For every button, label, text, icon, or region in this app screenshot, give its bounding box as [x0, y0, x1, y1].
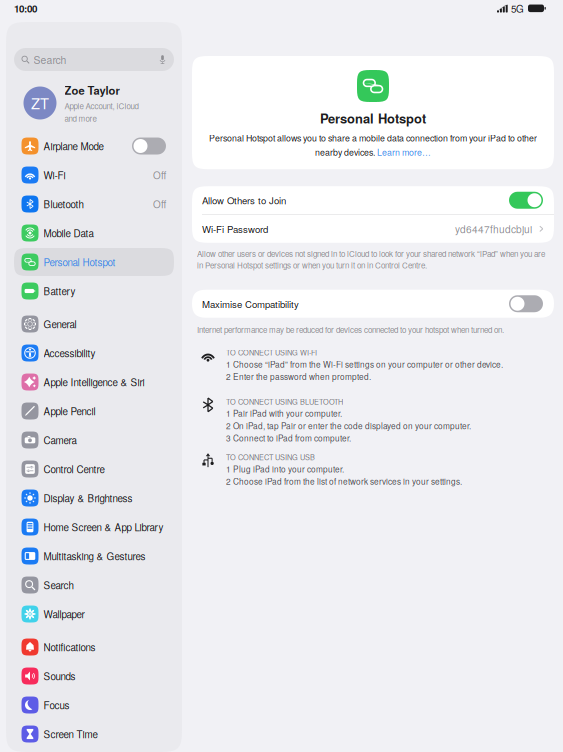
staticText: ZT [31, 92, 49, 113]
button[interactable]: Wi-Fi Password [192, 215, 554, 243]
staticText: Focus [43, 698, 69, 712]
staticText: Apple Intelligence & Siri [43, 375, 144, 389]
staticText: Apple Pencil [43, 404, 95, 418]
button[interactable]: Sounds [14, 662, 174, 690]
button[interactable]: Multitasking & Gestures [14, 542, 174, 570]
staticText: Display & Brightness [43, 491, 132, 505]
staticText: Search [43, 578, 73, 592]
staticText: Internet performance may be reduced for … [197, 324, 504, 335]
staticText: Battery [43, 284, 75, 298]
staticText: 3 Connect to iPad from computer. [226, 432, 351, 444]
staticText: General [43, 317, 76, 331]
button[interactable]: Search [14, 571, 174, 599]
staticText: Learn more… [377, 146, 431, 158]
staticText: Allow other users or devices not signed … [197, 248, 545, 271]
button[interactable]: ZT [14, 81, 174, 125]
staticText: Wi-Fi Password [202, 222, 268, 236]
staticText: Zoe Taylor [64, 82, 119, 98]
button[interactable]: Control Centre [14, 455, 174, 483]
button[interactable]: Battery [14, 277, 174, 305]
button[interactable]: Display & Brightness [14, 484, 174, 512]
button[interactable]: Allow Others to Join [192, 186, 554, 214]
staticText: Off [153, 197, 166, 211]
staticText: Off [153, 168, 166, 182]
staticText: Mobile Data [43, 226, 93, 240]
staticText: 2 Enter the password when prompted. [226, 370, 371, 382]
button[interactable]: Mobile Data [14, 219, 174, 247]
button[interactable]: Bluetooth [14, 190, 174, 218]
staticText: 2 On iPad, tap Pair or enter the code di… [226, 420, 471, 431]
button[interactable]: Personal Hotspot [14, 248, 174, 276]
staticText: TO CONNECT USING USB [226, 452, 315, 462]
staticText: Wi-Fi [43, 168, 65, 182]
button[interactable]: Focus [14, 691, 174, 719]
staticText: Screen Time [43, 727, 97, 741]
button[interactable]: Screen Time [14, 720, 174, 748]
staticText: Notifications [43, 640, 95, 654]
staticText: Apple Account, iCloud [64, 100, 138, 112]
button[interactable]: Home Screen & App Library [14, 513, 174, 541]
staticText: yd6447fhudcbjui [455, 222, 532, 236]
button[interactable]: Airplane Mode [14, 132, 174, 160]
staticText: and more [64, 112, 96, 124]
staticText: Bluetooth [43, 197, 83, 211]
staticText: 1 Choose “iPad” from the Wi-Fi settings … [226, 358, 503, 370]
staticText: 1 Plug iPad into your computer. [226, 463, 344, 475]
staticText: Personal Hotspot [320, 109, 426, 127]
button[interactable]: Wi-Fi [14, 161, 174, 189]
button[interactable]: Notifications [14, 633, 174, 661]
staticText: Personal Hotspot allows you to share a m… [209, 131, 537, 144]
button[interactable]: Camera [14, 426, 174, 454]
button[interactable]: Apple Pencil [14, 397, 174, 425]
staticText: Allow Others to Join [202, 193, 286, 207]
staticText: Wallpaper [43, 607, 84, 621]
button[interactable]: Maximise Compatibility [192, 290, 554, 318]
staticText: Multitasking & Gestures [43, 549, 145, 563]
staticText: Control Centre [43, 462, 104, 476]
staticText: Home Screen & App Library [43, 520, 163, 534]
button[interactable]: Wallpaper [14, 600, 174, 628]
staticText: TO CONNECT USING WI-FI [226, 347, 317, 358]
staticText: 10:00 [14, 1, 37, 15]
staticText: Personal Hotspot [43, 255, 115, 269]
staticText: Camera [43, 433, 76, 447]
staticText: Airplane Mode [43, 139, 103, 153]
staticText: 5G [511, 1, 524, 15]
staticText: Accessibility [43, 346, 95, 360]
button[interactable]: Apple Intelligence & Siri [14, 368, 174, 396]
staticText: 2 Choose iPad from the list of network s… [226, 475, 462, 487]
button[interactable]: Accessibility [14, 339, 174, 367]
button[interactable]: General [14, 310, 174, 338]
staticText: TO CONNECT USING BLUETOOTH [226, 396, 343, 407]
staticText: Sounds [43, 669, 75, 683]
staticText: 1 Pair iPad with your computer. [226, 407, 342, 419]
staticText: Maximise Compatibility [202, 297, 299, 311]
staticText: nearby devices. [315, 146, 377, 158]
staticText: Search [34, 52, 67, 67]
